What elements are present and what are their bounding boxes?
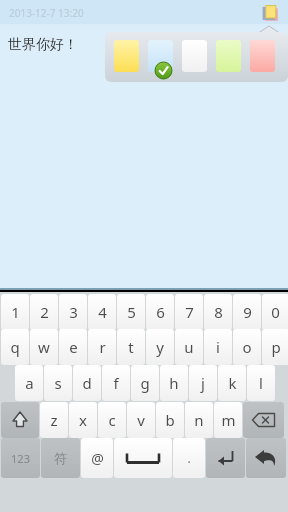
- button[interactable]: t: [117, 329, 145, 365]
- staticText: k: [228, 373, 237, 393]
- button[interactable]: k: [218, 365, 246, 401]
- staticText: 7: [185, 302, 194, 322]
- button[interactable]: Color 1: [112, 38, 141, 74]
- staticText: r: [99, 337, 106, 357]
- button[interactable]: Color 3: [180, 38, 209, 74]
- button[interactable]: m: [214, 402, 242, 438]
- staticText: 1: [11, 302, 20, 322]
- staticText: 9: [243, 302, 252, 322]
- staticText: 符: [54, 450, 67, 466]
- button[interactable]: x: [69, 402, 97, 438]
- button[interactable]: 6: [146, 294, 174, 330]
- staticText: x: [79, 410, 87, 430]
- button[interactable]: y: [146, 329, 174, 365]
- button[interactable]: 2: [30, 294, 58, 330]
- button[interactable]: 7: [175, 294, 203, 330]
- staticText: z: [50, 410, 58, 430]
- staticText: e: [69, 337, 78, 357]
- staticText: s: [54, 373, 62, 393]
- button[interactable]: 5: [117, 294, 145, 330]
- staticText: d: [82, 373, 92, 393]
- button[interactable]: 符: [41, 438, 80, 478]
- button[interactable]: Shift: [1, 402, 39, 438]
- button[interactable]: s: [44, 365, 72, 401]
- button[interactable]: Note color: [261, 4, 281, 24]
- staticText: 2: [40, 302, 49, 322]
- button[interactable]: e: [59, 329, 87, 365]
- staticText: t: [128, 337, 134, 357]
- button[interactable]: r: [88, 329, 116, 365]
- button[interactable]: Hide keyboard: [246, 438, 286, 478]
- staticText: 6: [156, 302, 165, 322]
- staticText: h: [169, 373, 179, 393]
- staticText: c: [108, 410, 116, 430]
- button[interactable]: Color 2: [146, 38, 175, 74]
- staticText: 世界你好！: [8, 36, 78, 54]
- button[interactable]: Color 4: [214, 38, 243, 74]
- staticText: 0: [271, 302, 280, 322]
- staticText: j: [201, 373, 205, 393]
- button[interactable]: Space: [114, 438, 172, 478]
- button[interactable]: u: [175, 329, 203, 365]
- button[interactable]: q: [1, 329, 29, 365]
- staticText: 5: [127, 302, 136, 322]
- staticText: 4: [98, 302, 107, 322]
- button[interactable]: f: [102, 365, 130, 401]
- button[interactable]: o: [233, 329, 261, 365]
- staticText: w: [38, 337, 50, 357]
- button[interactable]: @: [81, 438, 113, 478]
- staticText: .: [187, 450, 191, 466]
- staticText: 8: [214, 302, 223, 322]
- button[interactable]: Color 5: [248, 38, 277, 74]
- button[interactable]: 4: [88, 294, 116, 330]
- staticText: @: [91, 449, 104, 468]
- staticText: u: [184, 337, 194, 357]
- button[interactable]: 123: [1, 438, 40, 478]
- button[interactable]: 1: [1, 294, 29, 330]
- button[interactable]: c: [98, 402, 126, 438]
- staticText: l: [259, 373, 263, 393]
- button[interactable]: .: [173, 438, 205, 478]
- staticText: m: [221, 410, 236, 430]
- button[interactable]: g: [131, 365, 159, 401]
- button[interactable]: l: [247, 365, 275, 401]
- staticText: v: [137, 410, 145, 430]
- staticText: p: [271, 337, 281, 357]
- button[interactable]: j: [189, 365, 217, 401]
- staticText: y: [156, 337, 164, 357]
- button[interactable]: Backspace: [243, 402, 284, 438]
- button[interactable]: 0: [262, 294, 288, 330]
- staticText: i: [216, 337, 220, 357]
- button[interactable]: 3: [59, 294, 87, 330]
- button[interactable]: z: [40, 402, 68, 438]
- staticText: o: [242, 337, 252, 357]
- button[interactable]: i: [204, 329, 232, 365]
- button[interactable]: d: [73, 365, 101, 401]
- staticText: 3: [69, 302, 78, 322]
- button[interactable]: v: [127, 402, 155, 438]
- button[interactable]: Enter: [206, 438, 245, 478]
- staticText: b: [165, 410, 175, 430]
- button[interactable]: 8: [204, 294, 232, 330]
- button[interactable]: 9: [233, 294, 261, 330]
- button[interactable]: b: [156, 402, 184, 438]
- button[interactable]: h: [160, 365, 188, 401]
- button[interactable]: w: [30, 329, 58, 365]
- button[interactable]: a: [15, 365, 43, 401]
- staticText: f: [113, 373, 119, 393]
- button[interactable]: n: [185, 402, 213, 438]
- button[interactable]: p: [262, 329, 288, 365]
- staticText: a: [25, 373, 34, 393]
- staticText: g: [140, 373, 150, 393]
- staticText: n: [194, 410, 204, 430]
- staticText: 2013-12-7 13:20: [9, 6, 84, 20]
- staticText: q: [10, 337, 20, 357]
- staticText: 123: [11, 451, 30, 466]
